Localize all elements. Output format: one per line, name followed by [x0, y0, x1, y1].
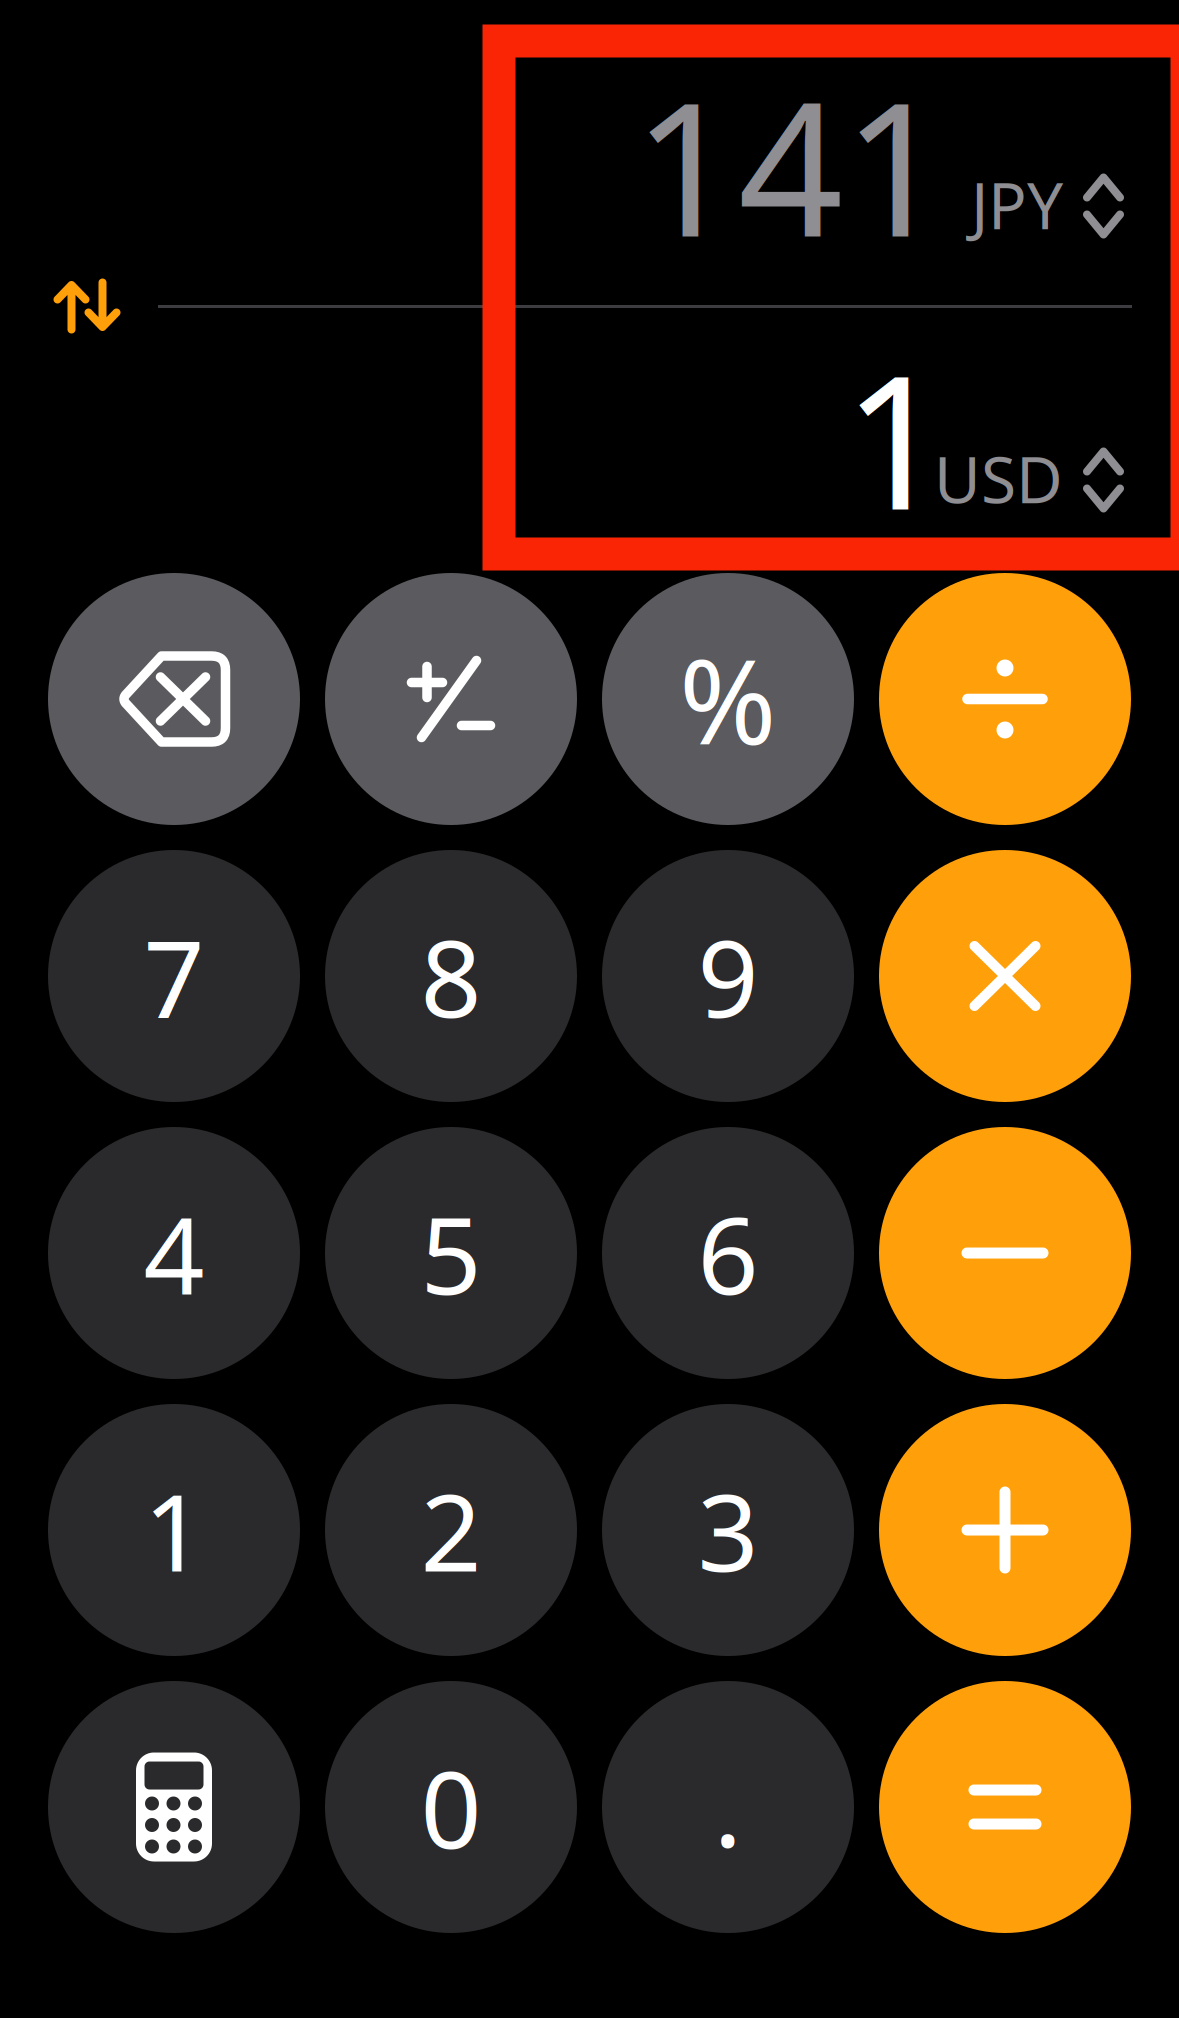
- button[interactable]: Multiply: [879, 850, 1131, 1102]
- button[interactable]: 5: [325, 1127, 577, 1379]
- staticText: 7: [143, 905, 204, 1047]
- staticText: 0: [420, 1736, 481, 1878]
- button[interactable]: 8: [325, 850, 577, 1102]
- button[interactable]: 6: [602, 1127, 854, 1379]
- button[interactable]: 9: [602, 850, 854, 1102]
- button[interactable]: Subtract: [879, 1127, 1131, 1379]
- button[interactable]: Plus minus: [325, 573, 577, 825]
- button[interactable]: Percent: [602, 573, 854, 825]
- staticText: 1: [843, 316, 948, 560]
- button[interactable]: Swap currencies: [55, 280, 119, 332]
- button[interactable]: 3: [602, 1404, 854, 1656]
- button[interactable]: .: [602, 1681, 854, 1933]
- staticText: 5: [420, 1182, 481, 1324]
- staticText: 9: [697, 905, 758, 1047]
- staticText: .: [713, 1735, 742, 1877]
- staticText: 6: [697, 1182, 758, 1324]
- button[interactable]: Add: [879, 1404, 1131, 1656]
- button[interactable]: Delete: [48, 573, 300, 825]
- staticText: 1: [143, 1459, 204, 1601]
- button[interactable]: 4: [48, 1127, 300, 1379]
- staticText: 3: [697, 1459, 758, 1601]
- staticText: 2: [420, 1459, 481, 1601]
- staticText: 4: [143, 1182, 204, 1324]
- staticText: 141: [633, 43, 948, 287]
- button[interactable]: Divide: [879, 573, 1131, 825]
- button[interactable]: 2: [325, 1404, 577, 1656]
- staticText: USD: [934, 436, 1063, 521]
- button[interactable]: Calculator: [48, 1681, 300, 1933]
- staticText: %: [679, 621, 777, 777]
- staticText: JPY: [971, 162, 1063, 247]
- button[interactable]: Equals: [879, 1681, 1131, 1933]
- button[interactable]: 7: [48, 850, 300, 1102]
- staticText: 8: [420, 905, 481, 1047]
- button[interactable]: 1: [48, 1404, 300, 1656]
- button[interactable]: 0: [325, 1681, 577, 1933]
- button[interactable]: Change top currency, JPY: [971, 162, 1124, 247]
- button[interactable]: Change bottom currency, USD: [934, 436, 1124, 521]
